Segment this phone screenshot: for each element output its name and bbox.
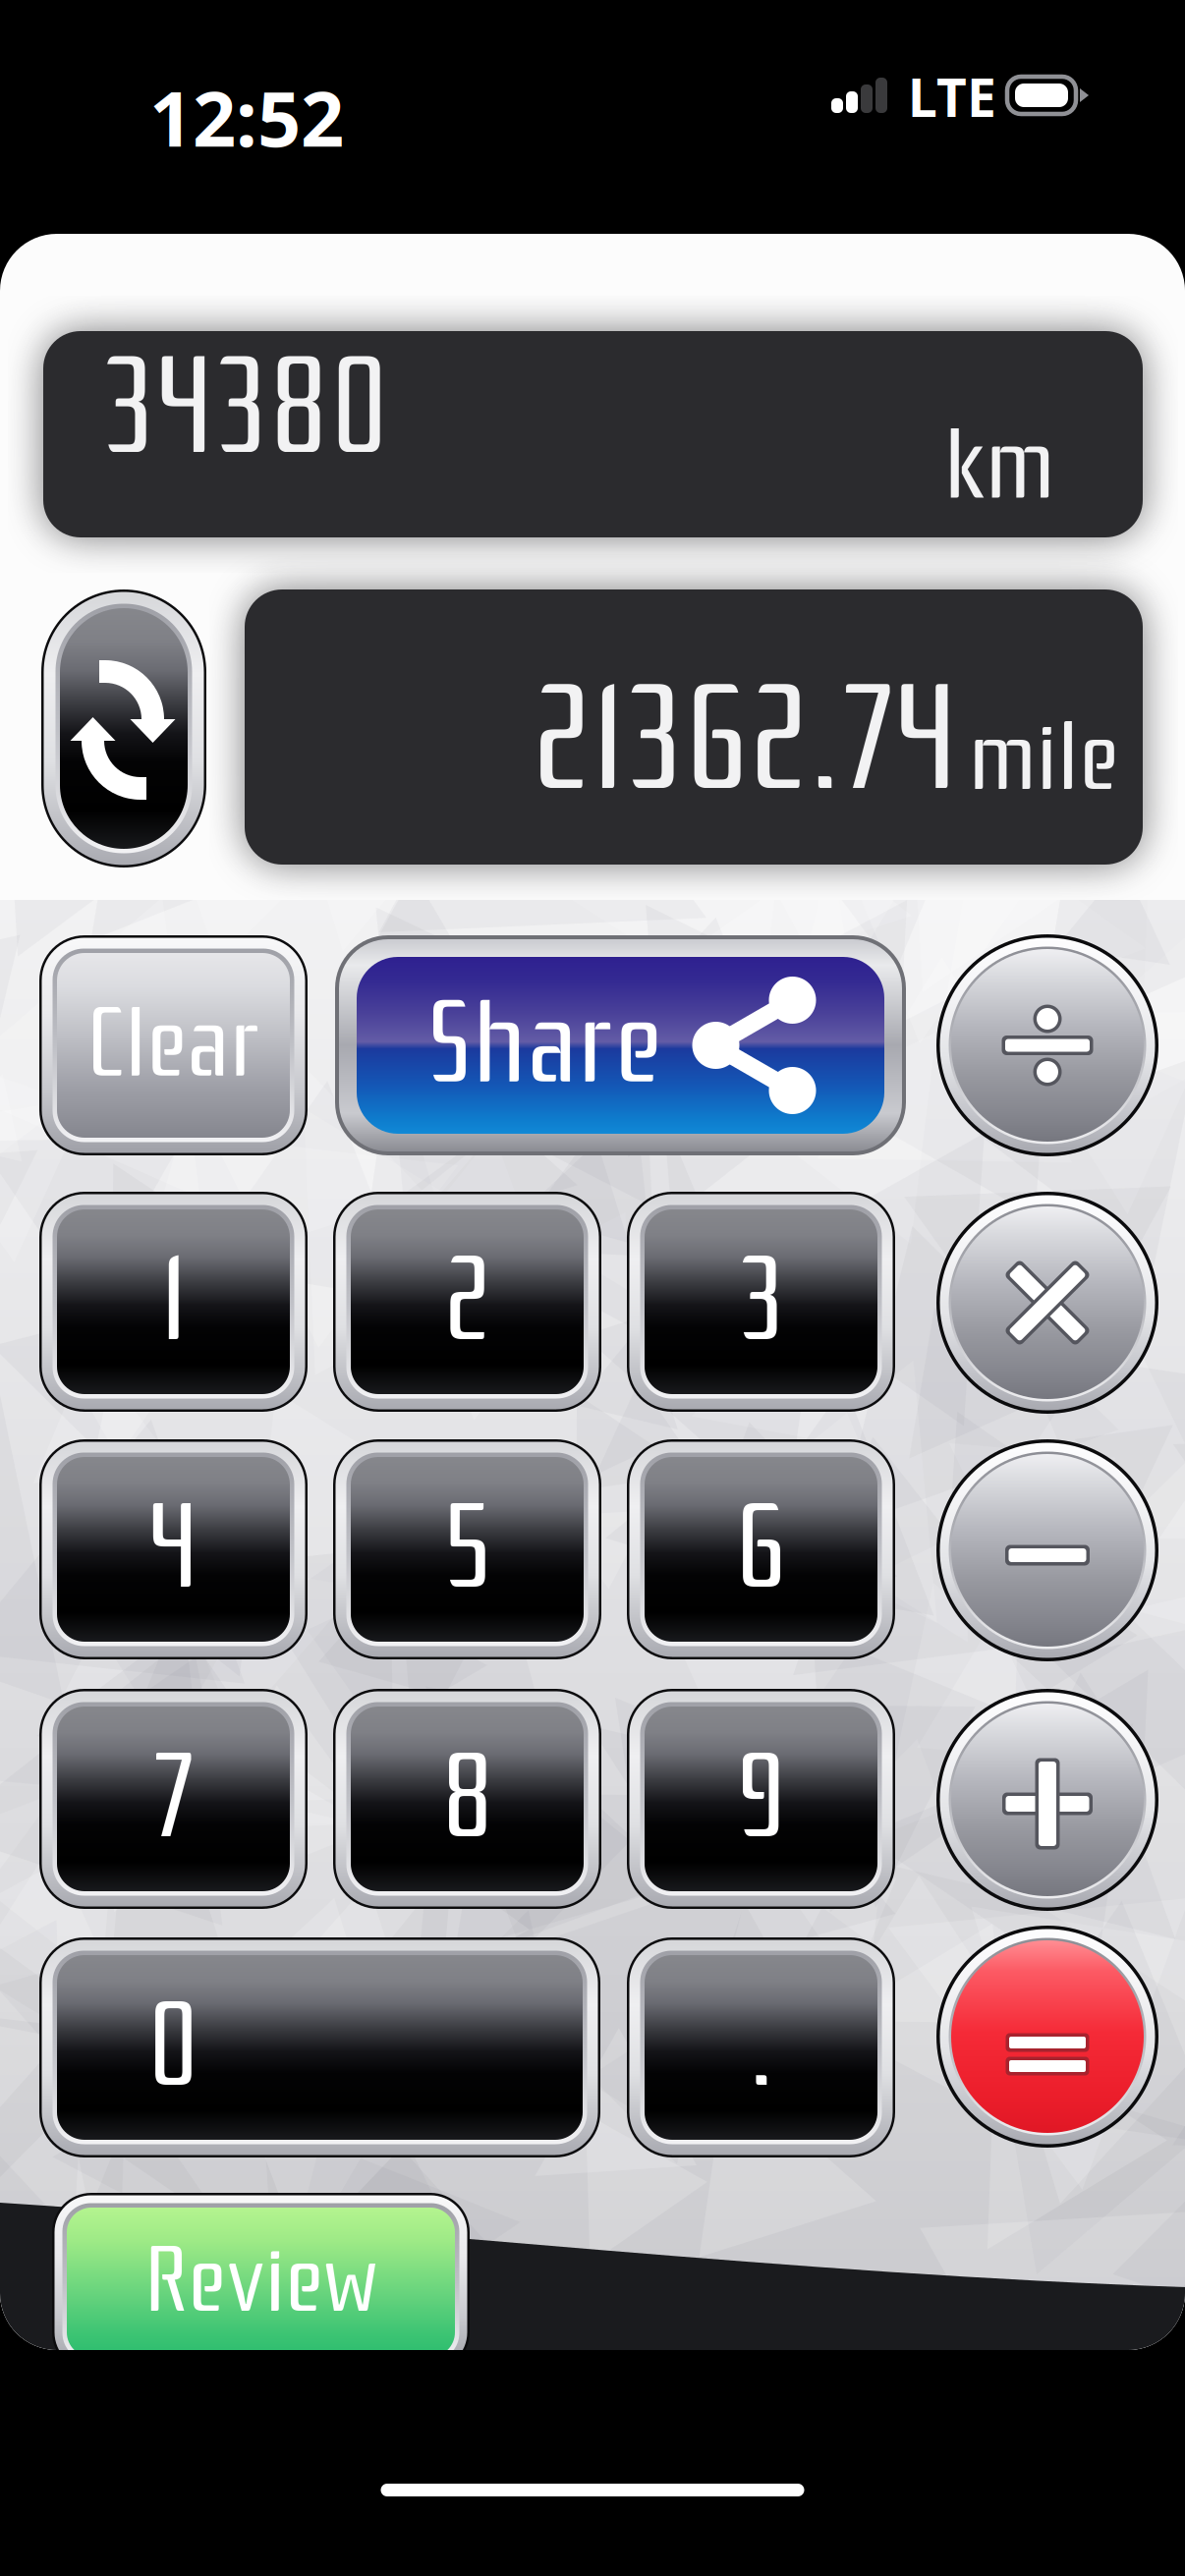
button[interactable]: 9 — [627, 1689, 895, 1909]
staticText: Clear — [86, 987, 260, 1100]
staticText: 2 — [443, 1230, 491, 1369]
staticText: LTE — [908, 62, 996, 131]
staticText: 12:52 — [149, 67, 344, 168]
staticText: Share — [426, 976, 662, 1111]
button[interactable]: 7 — [39, 1689, 308, 1909]
staticText: mile — [969, 701, 1119, 813]
button[interactable]: 0 — [39, 1937, 600, 2157]
button[interactable]: 3 — [627, 1192, 895, 1412]
button[interactable]: Clear — [39, 935, 308, 1155]
staticText: km — [944, 408, 1055, 522]
button[interactable]: 6 — [627, 1439, 895, 1659]
button[interactable]: 2 — [333, 1192, 601, 1412]
staticText: 0 — [147, 1976, 200, 2115]
button[interactable]: Plus — [936, 1689, 1158, 1911]
staticText: 8 — [441, 1727, 494, 1866]
button[interactable]: Review — [52, 2193, 470, 2372]
button[interactable]: . — [627, 1937, 895, 2157]
staticText: 3 — [737, 1230, 785, 1369]
button[interactable]: Equals — [936, 1926, 1158, 2148]
button[interactable]: Swap units — [41, 589, 206, 868]
button[interactable]: 8 — [333, 1689, 601, 1909]
button[interactable]: 1 — [39, 1192, 308, 1412]
staticText: 21362.74 — [532, 653, 958, 826]
staticText: 9 — [735, 1727, 787, 1866]
staticText: 4 — [147, 1478, 199, 1617]
staticText: 34380 — [101, 328, 389, 487]
button[interactable]: Minus — [936, 1439, 1158, 1661]
button[interactable]: 5 — [333, 1439, 601, 1659]
staticText: 5 — [443, 1478, 492, 1617]
button[interactable]: 4 — [39, 1439, 308, 1659]
button[interactable]: Share — [335, 935, 906, 1155]
button[interactable]: Multiply — [936, 1192, 1158, 1414]
button[interactable]: Divide — [936, 934, 1158, 1156]
staticText: Review — [144, 2227, 377, 2334]
staticText: 1 — [160, 1230, 187, 1369]
staticText: 6 — [734, 1478, 788, 1617]
staticText: . — [748, 1976, 774, 2115]
staticText: 7 — [152, 1727, 195, 1866]
